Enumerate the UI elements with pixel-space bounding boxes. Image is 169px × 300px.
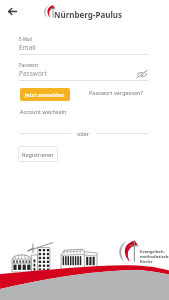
staticText: Registrieren bbox=[22, 151, 54, 158]
staticText: E-Mail bbox=[19, 36, 32, 42]
button[interactable]: Passwort vergessen? bbox=[89, 89, 143, 96]
staticText: Passwort bbox=[19, 69, 47, 78]
staticText: Email bbox=[19, 43, 36, 52]
staticText: Jetzt anmelden bbox=[25, 91, 65, 98]
staticText: oder bbox=[77, 130, 90, 137]
staticText: Passwort vergessen? bbox=[89, 89, 143, 96]
button[interactable]: Jetzt anmelden bbox=[20, 88, 70, 101]
staticText: Passwort bbox=[19, 62, 39, 68]
button[interactable]: Account wechseln bbox=[20, 108, 67, 115]
staticText: Nürnberg-Paulus bbox=[54, 9, 122, 20]
staticText: Evangelisch- methodistische Kirche bbox=[140, 249, 169, 264]
button[interactable]: Show password bbox=[136, 69, 148, 79]
staticText: Account wechseln bbox=[20, 108, 67, 115]
button[interactable]: Registrieren bbox=[18, 146, 58, 162]
button[interactable]: Back bbox=[4, 3, 20, 19]
